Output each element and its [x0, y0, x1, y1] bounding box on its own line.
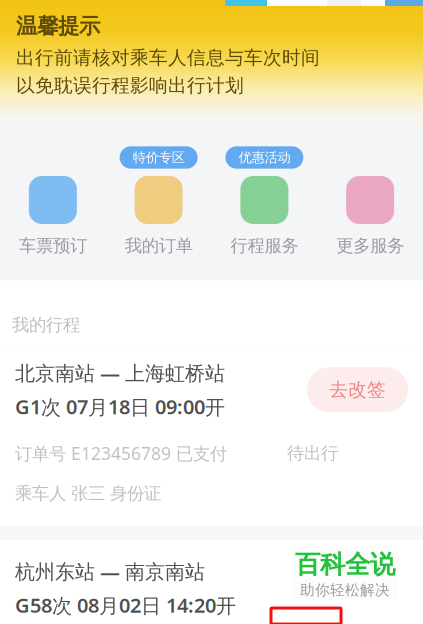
staticText: 百科全说 — [295, 549, 395, 580]
staticText: 优惠活动 — [238, 149, 290, 166]
staticText: 待出行 — [287, 443, 338, 464]
staticText: 北京南站 — 上海虹桥站 — [15, 360, 225, 386]
staticText: 助你轻松解决 — [300, 581, 390, 599]
staticText: 杭州东站 — 南京南站 — [15, 558, 205, 585]
staticText: 行程服务 — [230, 235, 298, 256]
staticText: 特价专区 — [133, 149, 185, 166]
button[interactable]: 去改签 — [307, 367, 408, 412]
button[interactable]: Submit — [271, 608, 341, 624]
staticText: 车票预订 — [19, 235, 87, 256]
staticText: 订单号 E123456789 已支付 — [15, 442, 227, 465]
button[interactable]: 更多服务 — [317, 148, 423, 256]
staticText: 我的行程 — [12, 314, 80, 336]
staticText: 温馨提示 — [16, 13, 100, 39]
staticText: G1次 07月18日 09:00开 — [15, 393, 225, 420]
staticText: 我的订单 — [125, 235, 193, 256]
staticText: G58次 08月02日 14:20开 — [15, 592, 236, 618]
staticText: 乘车人 张三 身份证 — [15, 483, 161, 504]
button[interactable]: 车票预订 — [0, 148, 106, 256]
staticText: 去改签 — [329, 378, 386, 401]
staticText: 出行前请核对乘车人信息与车次时间 — [16, 46, 320, 69]
button[interactable]: 特价专区 — [106, 148, 212, 256]
staticText: 以免耽误行程影响出行计划 — [16, 74, 244, 97]
staticText: 更多服务 — [336, 235, 404, 256]
button[interactable]: 优惠活动 — [211, 148, 317, 256]
